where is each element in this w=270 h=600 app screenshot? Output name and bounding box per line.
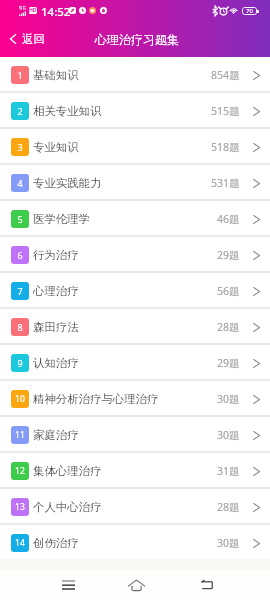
button[interactable]: 2 [0, 93, 270, 127]
button[interactable]: 9 [0, 345, 270, 379]
staticText: 70 [246, 7, 253, 15]
button[interactable]: 5 [0, 201, 270, 235]
staticText: 29题 [217, 248, 240, 262]
staticText: 46题 [217, 212, 240, 226]
staticText: 专业实践能力 [33, 176, 102, 190]
staticText: 心理治疗习题集 [95, 32, 179, 47]
button[interactable]: 返回 [0, 21, 53, 57]
staticText: 28题 [217, 500, 240, 514]
button[interactable]: Home [116, 570, 156, 600]
staticText: 1 [17, 69, 23, 81]
staticText: 28题 [217, 320, 240, 334]
staticText: 30题 [217, 428, 240, 442]
staticText: 2 [17, 105, 23, 117]
staticText: 12 [15, 465, 25, 477]
staticText: 30题 [217, 392, 240, 406]
staticText: 5 [17, 213, 23, 225]
staticText: 精神分析治疗与心理治疗 [33, 392, 159, 406]
staticText: 7 [17, 285, 23, 297]
staticText: 515题 [211, 104, 240, 118]
staticText: 29题 [217, 356, 240, 370]
button[interactable]: 14 [0, 525, 270, 559]
button[interactable]: 12 [0, 453, 270, 487]
button[interactable]: 6 [0, 237, 270, 271]
staticText: 集体心理治疗 [33, 464, 102, 478]
staticText: 3 [17, 141, 23, 153]
staticText: 11 [15, 429, 25, 441]
staticText: 心理治疗 [33, 284, 79, 298]
staticText: 返回 [22, 32, 45, 46]
staticText: 6 [17, 249, 23, 261]
staticText: 个人中心治疗 [33, 500, 102, 514]
staticText: 56题 [217, 284, 240, 298]
staticText: 森田疗法 [33, 320, 79, 334]
staticText: 14 [15, 537, 25, 549]
staticText: 13 [15, 501, 25, 513]
staticText: 8 [17, 321, 23, 333]
staticText: 行为治疗 [33, 248, 79, 262]
button[interactable]: 8 [0, 309, 270, 343]
staticText: 31题 [217, 464, 240, 478]
staticText: 518题 [211, 140, 240, 154]
staticText: 创伤治疗 [33, 536, 79, 550]
staticText: 专业知识 [33, 140, 79, 154]
staticText: 531题 [211, 176, 240, 190]
button[interactable]: 13 [0, 489, 270, 523]
staticText: 30题 [217, 536, 240, 550]
button[interactable]: Back [187, 570, 227, 600]
button[interactable]: 1 [0, 57, 270, 91]
staticText: HD [29, 7, 37, 14]
staticText: 4 [17, 177, 23, 189]
staticText: 9 [17, 357, 23, 369]
button[interactable]: 7 [0, 273, 270, 307]
staticText: 认知治疗 [33, 356, 79, 370]
staticText: 854题 [211, 68, 240, 82]
button[interactable]: 4 [0, 165, 270, 199]
staticText: 家庭治疗 [33, 428, 79, 442]
staticText: 14:52 [41, 4, 71, 20]
button[interactable]: 11 [0, 417, 270, 451]
staticText: 相关专业知识 [33, 104, 102, 118]
button[interactable]: 3 [0, 129, 270, 163]
staticText: 基础知识 [33, 68, 79, 82]
button[interactable]: 10 [0, 381, 270, 415]
button[interactable]: Recent apps [48, 570, 88, 600]
staticText: 医学伦理学 [33, 212, 90, 226]
staticText: 10 [15, 393, 25, 405]
